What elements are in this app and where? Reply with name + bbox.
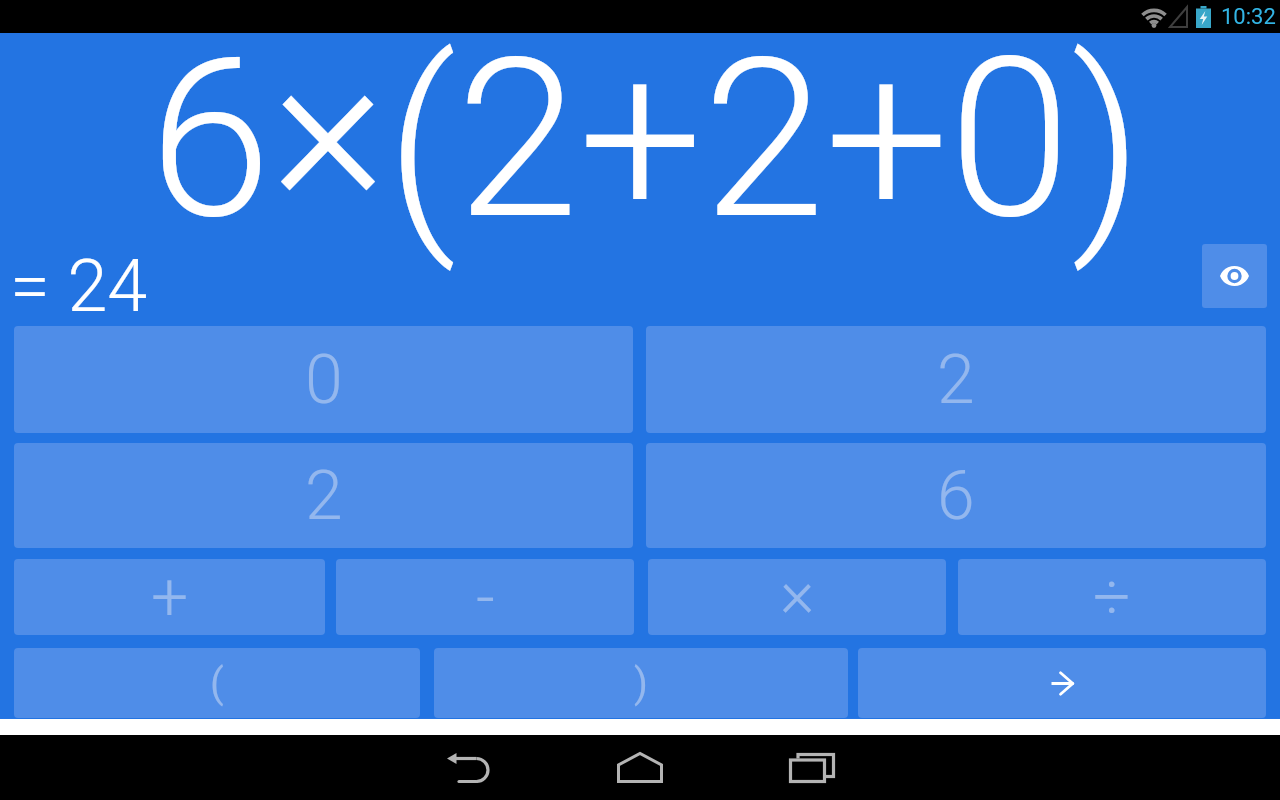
button[interactable]: ( bbox=[14, 648, 420, 718]
staticText: 6 bbox=[937, 456, 975, 536]
button[interactable] bbox=[428, 735, 508, 800]
staticText: + bbox=[151, 559, 189, 635]
button[interactable]: × bbox=[648, 559, 946, 635]
staticText: ÷ bbox=[1093, 559, 1131, 635]
staticText: ) bbox=[634, 660, 648, 707]
staticText: 2 bbox=[305, 456, 343, 536]
button[interactable]: - bbox=[336, 559, 634, 635]
staticText: ( bbox=[210, 660, 224, 707]
button[interactable]: 2 bbox=[646, 326, 1266, 433]
button[interactable] bbox=[858, 648, 1266, 718]
button[interactable] bbox=[600, 735, 680, 800]
button[interactable]: 2 bbox=[14, 443, 633, 548]
staticText: 6×(2+2+0) bbox=[149, 0, 1143, 274]
button[interactable]: 6 bbox=[646, 443, 1266, 548]
button[interactable]: ÷ bbox=[958, 559, 1266, 635]
staticText: 10:32 bbox=[1221, 4, 1276, 30]
staticText: - bbox=[476, 559, 495, 635]
button[interactable] bbox=[772, 735, 852, 800]
button[interactable]: + bbox=[14, 559, 325, 635]
button[interactable]: 0 bbox=[14, 326, 633, 433]
staticText: = 24 bbox=[10, 244, 148, 328]
button[interactable] bbox=[1202, 244, 1267, 308]
staticText: 0 bbox=[305, 340, 343, 420]
button[interactable]: ) bbox=[434, 648, 848, 718]
staticText: × bbox=[780, 559, 815, 631]
staticText: 2 bbox=[937, 340, 975, 420]
